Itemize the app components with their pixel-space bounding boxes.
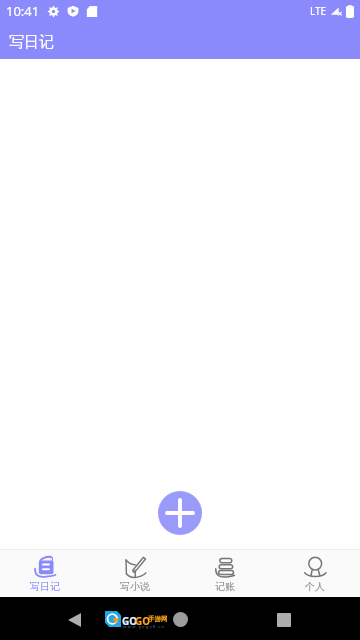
staticText: 记账 bbox=[215, 580, 235, 593]
staticText: w w w . g o g o 8 . c n bbox=[123, 624, 164, 629]
button[interactable]: Add bbox=[158, 491, 202, 535]
staticText: 写小说 bbox=[120, 580, 150, 593]
staticText: GO bbox=[135, 614, 151, 628]
staticText: LTE bbox=[310, 4, 327, 18]
button[interactable]: 记账 bbox=[180, 550, 270, 597]
staticText: 写日记 bbox=[30, 580, 60, 593]
button[interactable]: 写日记 bbox=[0, 550, 90, 597]
staticText: 10:41 bbox=[6, 2, 40, 20]
staticText: 手游网 bbox=[148, 615, 168, 623]
button[interactable]: 写小说 bbox=[90, 550, 180, 597]
staticText: GO bbox=[122, 614, 138, 628]
button[interactable]: Recents bbox=[266, 604, 302, 634]
button[interactable]: Back bbox=[56, 604, 92, 634]
staticText: 写日记 bbox=[9, 33, 54, 52]
button[interactable]: 个人 bbox=[270, 550, 360, 597]
staticText: 个人 bbox=[305, 580, 325, 593]
